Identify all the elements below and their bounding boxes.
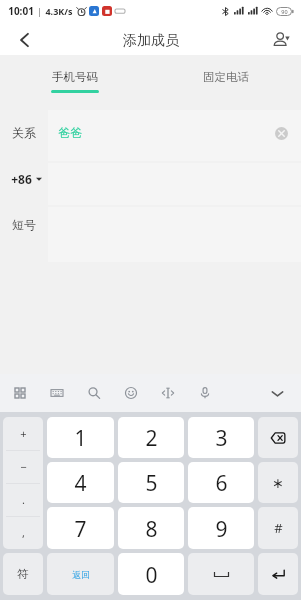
button[interactable]: 1: [47, 417, 114, 458]
button[interactable]: #: [258, 507, 298, 549]
button[interactable]: search: [75, 374, 112, 412]
button[interactable]: Back: [0, 22, 42, 55]
staticText: 7: [74, 515, 87, 544]
button[interactable]: −: [3, 450, 43, 483]
staticText: 2: [145, 424, 158, 453]
staticText: ■: [105, 8, 110, 14]
button[interactable]: kbd: [38, 374, 75, 412]
staticText: 6: [215, 469, 228, 498]
staticText: 9: [215, 515, 228, 544]
staticText: 10:01: [8, 4, 34, 18]
button[interactable]: ,: [3, 516, 43, 549]
staticText: ,: [22, 525, 25, 540]
staticText: 8: [145, 515, 158, 544]
button[interactable]: Space: [188, 553, 254, 595]
button[interactable]: enter: [258, 553, 298, 595]
button[interactable]: 0: [118, 553, 184, 595]
button[interactable]: Hide keyboard: [257, 374, 297, 412]
button[interactable]: emoji: [112, 374, 149, 412]
staticText: 5: [145, 469, 158, 498]
button[interactable]: grid: [1, 374, 38, 412]
staticText: 添加成员: [123, 32, 179, 50]
staticText: +: [20, 426, 27, 441]
staticText: |: [37, 5, 42, 17]
button[interactable]: Clear: [271, 123, 291, 143]
button[interactable]: 返回: [47, 553, 114, 595]
staticText: 固定电话: [203, 70, 249, 84]
staticText: 3: [215, 424, 228, 453]
button[interactable]: 3: [188, 417, 254, 458]
staticText: 1: [74, 424, 87, 453]
button[interactable]: ∗: [258, 462, 298, 503]
staticText: 爸爸: [58, 125, 82, 140]
button[interactable]: 爸爸: [48, 110, 301, 161]
staticText: +86: [11, 171, 32, 187]
button[interactable]: +86: [11, 171, 48, 187]
button[interactable]: 4: [47, 462, 114, 503]
button[interactable]: +: [3, 417, 43, 450]
staticText: 90: [281, 8, 288, 15]
staticText: 4: [74, 469, 87, 498]
button[interactable]: 2: [118, 417, 184, 458]
button[interactable]: .: [3, 483, 43, 516]
button[interactable]: 7: [47, 507, 114, 549]
button[interactable]: 8: [118, 507, 184, 549]
button[interactable]: Add contact: [259, 22, 301, 55]
staticText: #: [274, 519, 283, 537]
staticText: ∗: [272, 475, 284, 491]
button[interactable]: mic: [186, 374, 223, 412]
button[interactable]: 符: [3, 553, 43, 595]
staticText: .: [22, 492, 25, 507]
staticText: 4.3K/s: [45, 5, 73, 17]
button[interactable]: 6: [188, 462, 254, 503]
button[interactable]: cursor: [149, 374, 186, 412]
staticText: 短号: [12, 217, 36, 232]
staticText: 关系: [12, 125, 36, 140]
staticText: 符: [17, 567, 29, 581]
button[interactable]: 手机号码: [0, 55, 150, 98]
staticText: 手机号码: [52, 70, 98, 84]
button[interactable]: 5: [118, 462, 184, 503]
staticText: 0: [145, 561, 158, 590]
button[interactable]: 9: [188, 507, 254, 549]
button[interactable]: backspace: [258, 417, 298, 458]
staticText: −: [20, 459, 27, 474]
staticText: 返回: [72, 569, 90, 580]
button[interactable]: 固定电话: [150, 55, 301, 98]
